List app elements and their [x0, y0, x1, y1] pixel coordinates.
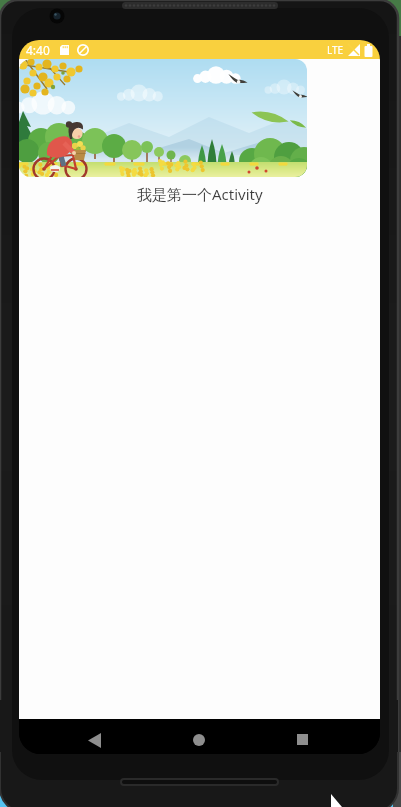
button[interactable]: [77, 723, 111, 754]
button[interactable]: [19, 59, 307, 177]
staticText: 我是第一个Activity: [137, 184, 263, 204]
staticText: LTE: [327, 43, 344, 57]
staticText: 4:40: [26, 42, 50, 58]
button[interactable]: [182, 723, 216, 754]
button[interactable]: [285, 722, 319, 754]
